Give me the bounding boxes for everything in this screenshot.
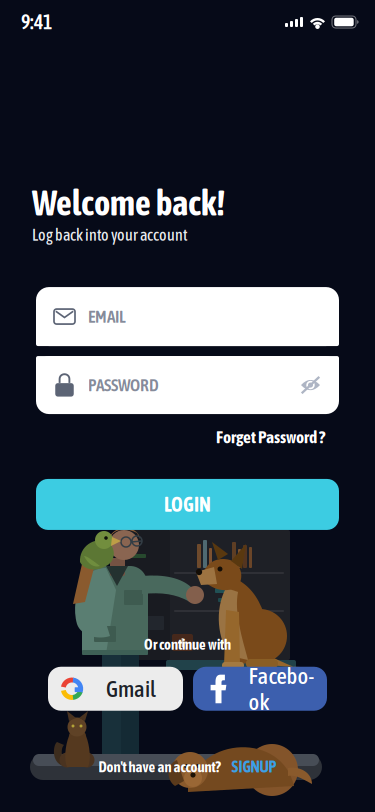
staticText: Facebook [248, 663, 314, 715]
button[interactable]: PASSWORD [0, 346, 375, 414]
button[interactable]: Facebook [193, 667, 327, 711]
staticText: SIGNUP [231, 758, 276, 776]
staticText: LOGIN [164, 493, 211, 516]
staticText: Forget Password ? [216, 427, 325, 447]
staticText: EMAIL [88, 307, 126, 326]
staticText: Don't have an account? [98, 758, 220, 775]
staticText: Gmail [106, 676, 156, 702]
staticText: Or continue with [144, 636, 231, 653]
button[interactable]: Forget Password ? [0, 414, 375, 447]
staticText: PASSWORD [88, 375, 159, 395]
button[interactable]: Gmail [48, 667, 183, 711]
staticText: Welcome back! [32, 183, 225, 223]
button[interactable]: EMAIL [0, 244, 375, 346]
staticText: 9:41 [21, 10, 52, 33]
button[interactable]: SIGNUP [231, 758, 276, 776]
button[interactable]: LOGIN [0, 447, 375, 530]
staticText: Log back into your account [32, 226, 188, 244]
